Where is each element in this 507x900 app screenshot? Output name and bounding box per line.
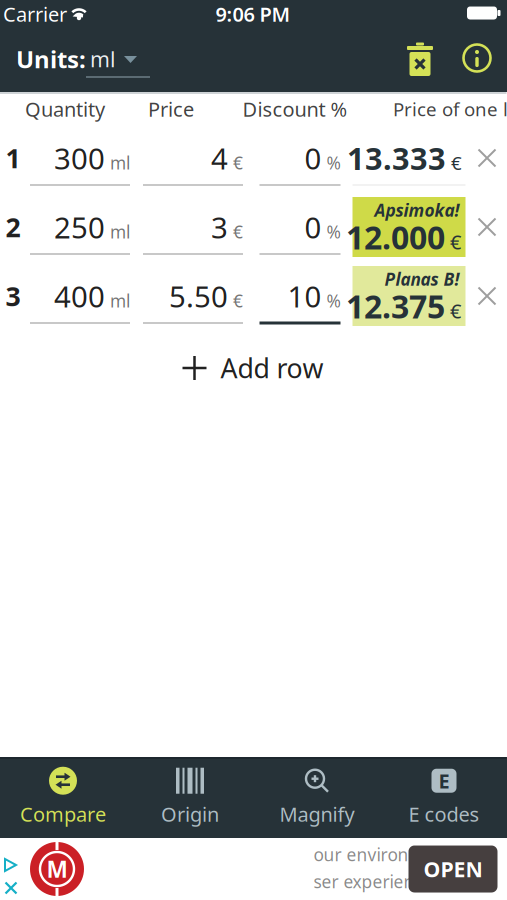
staticText: 0: [304, 207, 321, 246]
staticText: 12.000: [346, 216, 445, 258]
staticText: 3: [5, 278, 20, 314]
staticText: ml: [110, 289, 130, 312]
staticText: 400: [54, 276, 105, 315]
staticText: our environme: [313, 843, 434, 866]
staticText: %: [326, 220, 340, 243]
staticText: €: [450, 297, 461, 324]
staticText: Quantity: [25, 96, 105, 122]
button[interactable]: E: [381, 758, 507, 836]
staticText: 3: [211, 207, 228, 246]
staticText: Magnify: [279, 801, 354, 827]
staticText: Origin: [161, 801, 219, 827]
staticText: Add row: [220, 350, 323, 386]
staticText: 9:06 PM: [215, 1, 290, 27]
staticText: OPEN: [423, 855, 482, 883]
staticText: 5.50: [169, 276, 228, 315]
staticText: Units:: [16, 43, 86, 75]
staticText: 300: [54, 138, 105, 177]
button[interactable]: Info: [0, 27, 507, 92]
staticText: ml: [110, 151, 130, 174]
staticText: M: [46, 854, 67, 884]
staticText: Price: [148, 96, 194, 122]
button[interactable]: Add row: [0, 92, 507, 757]
staticText: Apsimoka!: [374, 198, 459, 222]
staticText: 1: [5, 140, 20, 176]
button[interactable]: Remove row 1: [470, 141, 504, 175]
staticText: €: [233, 289, 243, 312]
button[interactable]: Remove row 2: [470, 210, 504, 244]
staticText: %: [326, 151, 340, 174]
staticText: 2: [5, 209, 20, 245]
button[interactable]: ml: [91, 37, 157, 85]
button[interactable]: Origin: [127, 758, 253, 836]
button[interactable]: Compare: [0, 758, 126, 836]
staticText: 250: [54, 207, 105, 246]
staticText: Discount %: [242, 96, 347, 122]
staticText: 10: [287, 276, 321, 315]
staticText: €: [450, 228, 461, 255]
button[interactable]: Remove row 3: [470, 279, 504, 313]
button[interactable]: Clear all: [0, 27, 507, 92]
button[interactable]: Ad choices: [4, 858, 18, 872]
staticText: €: [451, 150, 462, 175]
staticText: 0: [304, 138, 321, 177]
staticText: Price of one l: [393, 97, 507, 121]
staticText: ml: [90, 45, 116, 73]
button[interactable]: Close ad: [4, 881, 18, 895]
staticText: €: [233, 151, 243, 174]
staticText: ser experienc: [313, 870, 422, 893]
staticText: %: [326, 289, 340, 312]
staticText: E codes: [408, 801, 479, 827]
staticText: Compare: [20, 801, 106, 827]
staticText: Carrier: [3, 1, 67, 27]
staticText: €: [233, 220, 243, 243]
button[interactable]: Magnify: [254, 758, 380, 836]
staticText: 12.375: [346, 285, 445, 327]
staticText: Planas B!: [384, 267, 459, 291]
button[interactable]: Open ad: [408, 845, 497, 892]
staticText: E: [438, 767, 449, 794]
staticText: ml: [110, 220, 130, 243]
staticText: 13.333: [347, 138, 446, 178]
staticText: 4: [211, 138, 228, 177]
